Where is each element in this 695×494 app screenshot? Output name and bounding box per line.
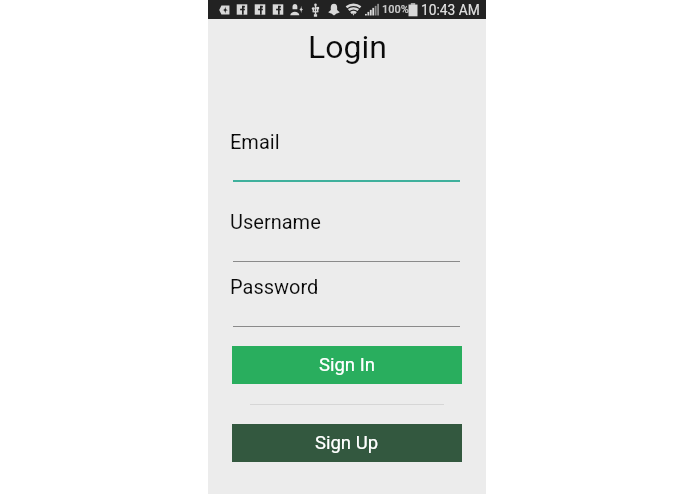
staticText: Password xyxy=(230,275,319,298)
button[interactable]: Sign In xyxy=(232,346,462,384)
other: USB connected xyxy=(311,3,320,17)
other: Facebook notification xyxy=(254,3,266,16)
button[interactable]: Email xyxy=(230,124,463,182)
other: Tag notification xyxy=(219,4,230,16)
other: Battery full xyxy=(408,3,418,17)
staticText: Username xyxy=(230,210,321,233)
button[interactable]: Username xyxy=(230,204,463,262)
staticText: Sign In xyxy=(319,354,375,376)
other: Facebook notification xyxy=(272,3,284,16)
staticText: Sign Up xyxy=(315,432,379,454)
button[interactable]: Password xyxy=(230,269,463,327)
staticText: Login xyxy=(308,28,387,66)
button[interactable]: Sign Up xyxy=(232,424,462,462)
other: Facebook notification xyxy=(236,3,248,16)
other: Wi-Fi xyxy=(346,3,361,16)
other: Snapchat notification xyxy=(328,3,340,16)
staticText: 10:43 AM xyxy=(421,2,480,18)
staticText: Email xyxy=(230,130,280,153)
staticText: 100% xyxy=(382,3,409,16)
other: New contact xyxy=(290,3,303,16)
other: Cellular signal xyxy=(365,3,379,16)
